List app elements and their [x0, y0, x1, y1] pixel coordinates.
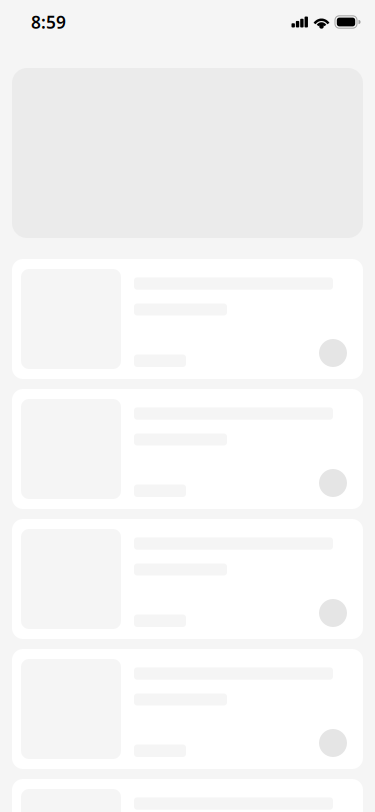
- button[interactable]: [12, 259, 363, 379]
- button[interactable]: [12, 519, 363, 639]
- button[interactable]: [12, 649, 363, 769]
- button[interactable]: [12, 389, 363, 509]
- staticText: 8:59: [31, 10, 66, 33]
- button[interactable]: [12, 779, 363, 812]
